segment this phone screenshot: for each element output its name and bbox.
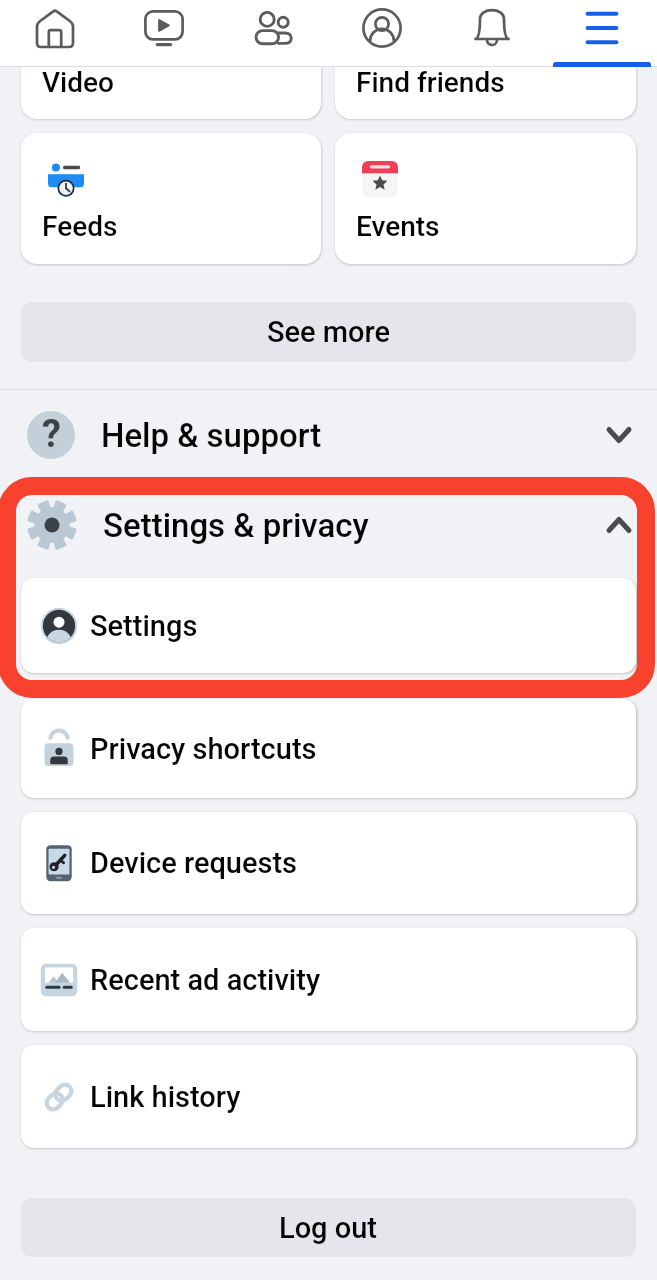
staticText: Device requests	[90, 846, 298, 880]
staticText: Settings & privacy	[103, 506, 608, 545]
staticText: Privacy shortcuts	[90, 732, 317, 766]
staticText: Feeds	[42, 210, 118, 243]
button[interactable]: Friends	[218, 0, 327, 66]
staticText: ?	[42, 412, 61, 457]
button[interactable]: Recent ad activity	[21, 928, 636, 1031]
button[interactable]: Profile	[327, 0, 437, 66]
button[interactable]: ?	[0, 390, 657, 480]
button[interactable]: Find friends	[335, 67, 636, 119]
button[interactable]: Notifications	[437, 0, 547, 66]
staticText: Settings	[90, 609, 198, 643]
staticText: Video	[42, 67, 114, 99]
button[interactable]: Feeds	[21, 133, 321, 264]
staticText: Recent ad activity	[90, 963, 321, 997]
staticText: Link history	[90, 1080, 241, 1114]
button[interactable]: Events	[335, 133, 636, 264]
button[interactable]: Settings & privacy	[0, 480, 657, 570]
button[interactable]: Log out	[21, 1198, 636, 1257]
button[interactable]: See more	[21, 302, 636, 362]
button[interactable]: Settings	[21, 578, 636, 673]
button[interactable]: Device requests	[21, 812, 636, 914]
button[interactable]: Link history	[21, 1045, 636, 1148]
staticText: Events	[356, 210, 440, 243]
button[interactable]: Menu	[547, 0, 657, 66]
button[interactable]: Privacy shortcuts	[21, 699, 636, 798]
staticText: See more	[267, 315, 391, 349]
staticText: Help & support	[101, 416, 608, 455]
button[interactable]: Video	[109, 0, 218, 66]
button[interactable]: Video	[21, 67, 321, 119]
staticText: Find friends	[356, 67, 505, 99]
button[interactable]: Home	[0, 0, 109, 66]
staticText: Log out	[279, 1211, 378, 1245]
